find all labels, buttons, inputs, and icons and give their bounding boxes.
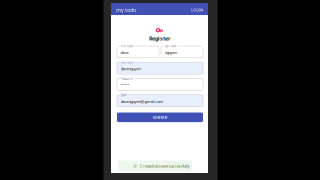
staticText: Password (121, 77, 133, 81)
staticText: Last name (165, 44, 177, 48)
button[interactable]: SUBMIT (117, 112, 203, 122)
staticText: davenguyen (121, 66, 141, 71)
staticText: SUBMIT (152, 115, 167, 120)
staticText: First name (121, 44, 134, 48)
staticText: davenguyen@gmail.com (121, 99, 164, 104)
staticText: nguyen (165, 50, 177, 55)
staticText: ✓ (133, 164, 136, 168)
staticText: Email (121, 93, 127, 97)
button[interactable]: LOGIN (191, 7, 203, 12)
staticText: Created account successfully (139, 163, 189, 169)
staticText: Username (121, 61, 134, 64)
staticText: dave (121, 50, 129, 55)
staticText: Register (149, 35, 170, 42)
staticText: LOGIN (191, 7, 203, 12)
staticText: my todo (116, 6, 136, 13)
